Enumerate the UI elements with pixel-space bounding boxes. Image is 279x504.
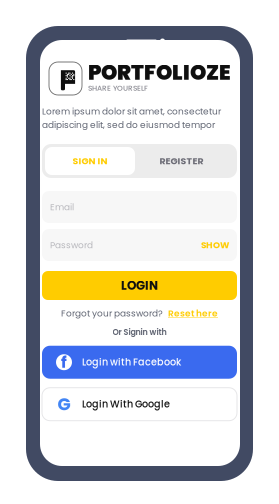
button[interactable]: G [42, 388, 237, 421]
staticText: Or Signin with [112, 326, 166, 338]
staticText: LOGIN [121, 277, 158, 294]
button[interactable]: REGISTER [135, 147, 228, 175]
staticText: Login With Google [82, 397, 170, 411]
staticText: PORTFOLIOZE [88, 58, 231, 87]
staticText: SHOW [201, 239, 229, 251]
button[interactable]: f [42, 346, 237, 379]
staticText: SHARE YOURSELF [88, 83, 148, 93]
staticText: Lorem ipsum dolor sit amet, consectetur [42, 105, 221, 117]
staticText: Password [50, 239, 93, 251]
staticText: Forgot your password? [61, 307, 163, 319]
staticText: adipiscing elit, sed do eiusmod tempor [42, 118, 215, 131]
staticText: G [57, 392, 70, 416]
button[interactable]: Reset here [168, 307, 218, 319]
button[interactable]: SIGN IN [45, 147, 135, 175]
staticText: REGISTER [159, 154, 203, 168]
button[interactable]: LOGIN [42, 271, 237, 300]
staticText: f [61, 351, 67, 373]
staticText: Reset here [168, 307, 218, 319]
staticText: SIGN IN [72, 154, 107, 168]
staticText: Email [50, 201, 74, 213]
staticText: Login with Facebook [82, 355, 181, 369]
